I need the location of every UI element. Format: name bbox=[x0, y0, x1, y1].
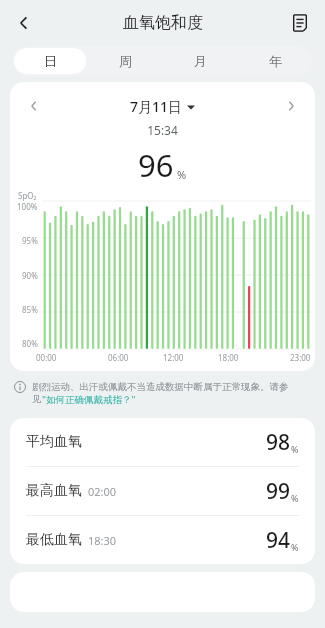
staticText: 18:30 bbox=[88, 533, 117, 548]
staticText: 最高血氧 bbox=[26, 482, 82, 500]
staticText: 血氧饱和度 bbox=[123, 13, 203, 33]
staticText: SpO₂ bbox=[18, 190, 37, 201]
button[interactable]: Back bbox=[4, 3, 44, 43]
staticText: 年 bbox=[269, 53, 282, 69]
staticText: 12:00 bbox=[163, 352, 184, 363]
staticText: 7月11日 bbox=[130, 97, 183, 116]
button[interactable]: 最低血氧 bbox=[10, 516, 315, 564]
button[interactable]: Next day bbox=[277, 92, 305, 120]
staticText: 月 bbox=[194, 53, 207, 69]
staticText: 15:34 bbox=[10, 122, 315, 138]
staticText: 日 bbox=[44, 53, 57, 69]
button[interactable]: 月 bbox=[165, 48, 236, 74]
button[interactable]: Previous day bbox=[20, 92, 48, 120]
staticText: 23:00 bbox=[290, 352, 311, 363]
staticText: 最低血氧 bbox=[26, 531, 82, 549]
button[interactable]: 最高血氧 bbox=[10, 467, 315, 515]
staticText: 见 bbox=[32, 393, 42, 405]
button[interactable]: 平均血氧 bbox=[10, 418, 315, 466]
staticText: 98 bbox=[266, 428, 291, 457]
staticText: 06:00 bbox=[108, 352, 129, 363]
button[interactable]: 周 bbox=[90, 48, 161, 74]
staticText: 85% bbox=[22, 304, 38, 315]
staticText: 90% bbox=[22, 270, 38, 281]
staticText: 96 bbox=[138, 144, 174, 186]
staticText: % bbox=[291, 541, 299, 553]
staticText: % bbox=[291, 492, 299, 504]
staticText: 平均血氧 bbox=[26, 433, 82, 451]
staticText: 00:00 bbox=[36, 352, 57, 363]
button[interactable]: Records bbox=[281, 4, 319, 42]
staticText: 02:00 bbox=[88, 484, 117, 499]
button[interactable]: 年 bbox=[240, 48, 311, 74]
button[interactable]: 7月11日 bbox=[48, 97, 277, 116]
staticText: 18:00 bbox=[218, 352, 239, 363]
staticText: 95% bbox=[22, 235, 38, 246]
staticText: % bbox=[291, 443, 299, 455]
staticText: 周 bbox=[119, 53, 132, 69]
button[interactable]: "如何正确佩戴戒指？" bbox=[42, 393, 136, 406]
staticText: 80% bbox=[22, 338, 38, 349]
staticText: % bbox=[177, 167, 187, 182]
staticText: 99 bbox=[266, 477, 291, 506]
staticText: 94 bbox=[266, 526, 291, 555]
staticText: 100% bbox=[17, 201, 38, 212]
staticText: 剧烈运动、出汗或佩戴不当造成数据中断属于正常现象。请参 bbox=[32, 381, 289, 393]
button[interactable]: 日 bbox=[14, 48, 86, 74]
